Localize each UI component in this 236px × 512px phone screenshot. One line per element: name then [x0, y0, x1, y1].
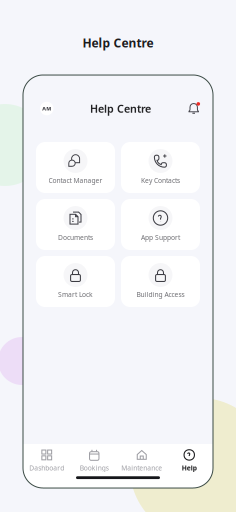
staticText: Key Contacts [141, 176, 180, 185]
button[interactable]: Help [165, 446, 213, 476]
staticText: Help Centre [82, 35, 153, 51]
staticText: Bookings [80, 463, 109, 472]
button[interactable]: Contact Manager [36, 142, 115, 193]
button[interactable]: Maintenance [118, 446, 165, 476]
button[interactable]: Dashboard [23, 446, 70, 476]
staticText: App Support [141, 233, 180, 242]
button[interactable]: Key Contacts [121, 142, 200, 193]
staticText: Building Access [136, 290, 184, 299]
button[interactable]: Notifications [187, 102, 200, 115]
staticText: Contact Manager [48, 176, 102, 185]
button[interactable]: Profile [40, 102, 53, 115]
staticText: Help [182, 463, 197, 472]
staticText: Maintenance [121, 463, 162, 472]
staticText: Help Centre [90, 101, 151, 116]
staticText: Smart Lock [58, 290, 93, 299]
staticText: Documents [58, 233, 93, 242]
staticText: AM [42, 105, 51, 112]
button[interactable]: Documents [36, 199, 115, 250]
button[interactable]: Building Access [121, 256, 200, 307]
button[interactable]: App Support [121, 199, 200, 250]
staticText: Dashboard [29, 463, 64, 472]
button[interactable]: Bookings [70, 446, 118, 476]
button[interactable]: Smart Lock [36, 256, 115, 307]
